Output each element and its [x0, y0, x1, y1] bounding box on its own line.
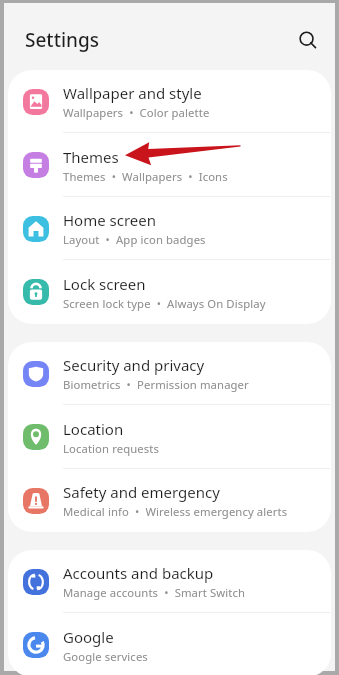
button[interactable]: Search: [287, 20, 327, 60]
button[interactable]: Security and privacy: [8, 342, 331, 405]
staticText: Location: [63, 419, 124, 439]
staticText: Themes • Wallpapers • Icons: [63, 169, 228, 184]
button[interactable]: Themes: [8, 133, 331, 197]
button[interactable]: Location: [8, 405, 331, 469]
staticText: Layout • App icon badges: [63, 232, 206, 247]
staticText: Lock screen: [63, 274, 146, 294]
staticText: Wallpaper and style: [63, 83, 202, 103]
staticText: Settings: [25, 27, 99, 53]
staticText: Medical info • Wireless emergency alerts: [63, 504, 288, 519]
button[interactable]: Safety and emergency: [8, 469, 331, 532]
button[interactable]: Wallpaper and style: [8, 70, 331, 133]
staticText: Home screen: [63, 210, 157, 230]
staticText: Safety and emergency: [63, 482, 220, 502]
button[interactable]: Google: [8, 613, 331, 675]
staticText: Location requests: [63, 441, 159, 456]
staticText: Screen lock type • Always On Display: [63, 296, 266, 311]
staticText: Accounts and backup: [63, 563, 214, 583]
staticText: Security and privacy: [63, 355, 205, 375]
staticText: Biometrics • Permission manager: [63, 377, 249, 392]
button[interactable]: Lock screen: [8, 260, 331, 324]
staticText: Google services: [63, 649, 148, 664]
button[interactable]: Accounts and backup: [8, 550, 331, 613]
staticText: Wallpapers • Color palette: [63, 105, 210, 120]
staticText: Manage accounts • Smart Switch: [63, 585, 246, 600]
staticText: Themes: [63, 147, 119, 167]
button[interactable]: Home screen: [8, 197, 331, 260]
staticText: Google: [63, 627, 114, 647]
